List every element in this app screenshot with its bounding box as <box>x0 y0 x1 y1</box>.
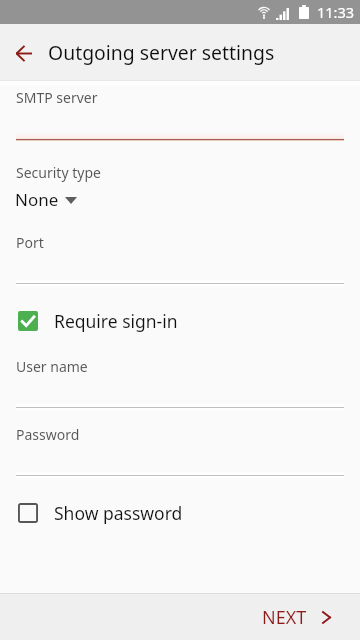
button[interactable]: User name <box>0 355 360 413</box>
staticText: User name <box>16 357 88 376</box>
button[interactable]: SMTP server <box>0 86 360 144</box>
staticText: SMTP server <box>16 88 98 107</box>
staticText: Port <box>16 233 44 252</box>
button[interactable]: Show password <box>0 491 360 535</box>
button[interactable]: Require sign-in <box>0 299 360 343</box>
staticText: 11:33 <box>317 2 355 22</box>
staticText: Outgoing server settings <box>48 39 275 65</box>
staticText: Show password <box>54 501 183 525</box>
button[interactable]: Security type <box>0 160 360 212</box>
staticText: None <box>15 188 59 211</box>
staticText: Require sign-in <box>54 309 178 333</box>
button[interactable]: NEXT <box>252 594 339 640</box>
button[interactable]: Port <box>0 231 360 289</box>
staticText: Password <box>16 425 80 444</box>
staticText: Security type <box>16 163 101 182</box>
staticText: NEXT <box>262 605 307 630</box>
button[interactable]: Password <box>0 423 360 481</box>
button[interactable]: Back <box>1 31 45 75</box>
